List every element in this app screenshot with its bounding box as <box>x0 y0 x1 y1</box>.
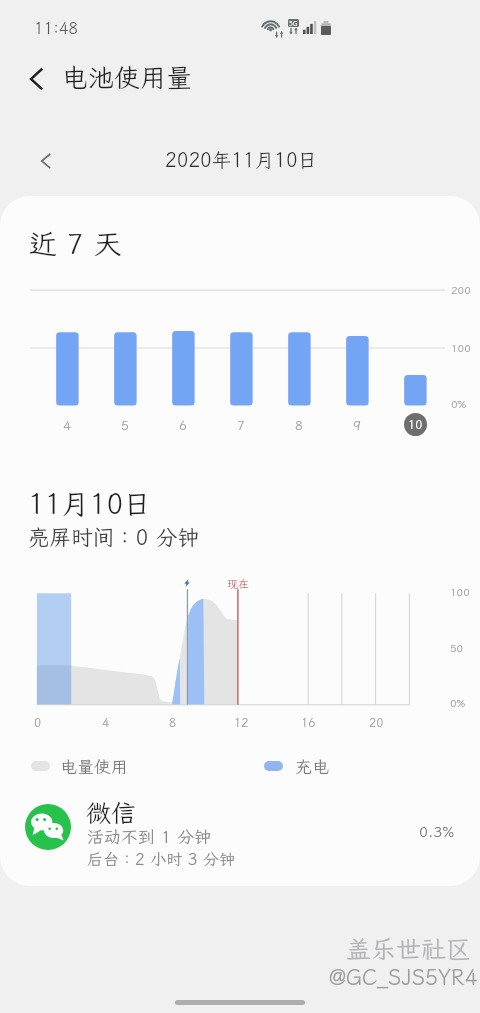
staticText: 0% <box>451 397 467 411</box>
staticText: 充电 <box>295 755 329 777</box>
staticText: 20 <box>369 715 384 731</box>
staticText: 电量使用 <box>60 755 128 777</box>
staticText: 微信 <box>86 796 137 829</box>
staticText: 10 <box>408 417 423 433</box>
staticText: 8 <box>295 417 303 434</box>
staticText: 11月10日 <box>28 485 152 522</box>
staticText: 后台：2 小时 3 分钟 <box>87 848 236 869</box>
staticText: 现在 <box>227 577 249 591</box>
staticText: 4 <box>63 417 71 434</box>
staticText: 亮屏时间：0 分钟 <box>28 523 199 551</box>
staticText: 5G <box>289 19 298 27</box>
button[interactable]: Previous day <box>27 143 63 179</box>
staticText: 0 <box>34 715 42 731</box>
button[interactable]: 微信 <box>0 796 480 872</box>
staticText: 5 <box>121 417 129 434</box>
staticText: 100 <box>451 341 471 355</box>
staticText: 16 <box>301 715 316 731</box>
staticText: 200 <box>451 283 471 297</box>
staticText: 4 <box>102 715 110 731</box>
staticText: 电池使用量 <box>62 60 193 94</box>
staticText: @GC_SJS5YR4 <box>329 963 478 991</box>
staticText: 50 <box>450 641 464 655</box>
staticText: 9 <box>353 417 361 434</box>
staticText: 8 <box>169 715 177 731</box>
staticText: 100 <box>450 585 470 599</box>
staticText: 0% <box>450 696 466 710</box>
staticText: 0.3% <box>419 822 455 842</box>
staticText: 6 <box>179 417 187 434</box>
staticText: 活动不到 1 分钟 <box>87 825 212 847</box>
staticText: 11:48 <box>34 17 79 38</box>
staticText: 12 <box>234 715 249 731</box>
staticText: 2020年11月10日 <box>165 147 318 173</box>
staticText: 盖乐世社区 <box>346 932 472 965</box>
staticText: 7 <box>237 417 245 434</box>
button[interactable]: Back <box>16 59 56 99</box>
staticText: 近 7 天 <box>29 225 122 262</box>
